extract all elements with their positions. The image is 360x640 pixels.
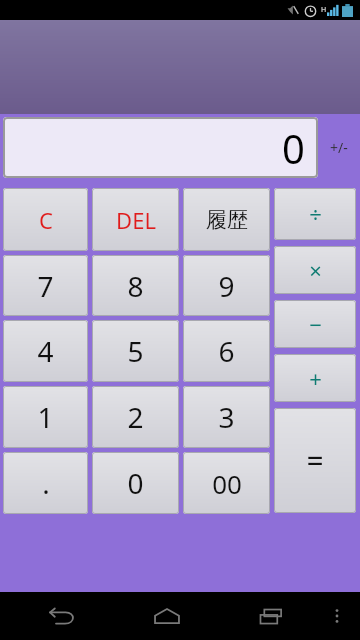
button[interactable]: DEL bbox=[92, 188, 179, 251]
button[interactable]: 3 bbox=[183, 386, 270, 448]
button[interactable]: 7 bbox=[3, 255, 88, 316]
staticText: 5 bbox=[127, 332, 144, 370]
button[interactable]: Add bbox=[274, 354, 356, 402]
button[interactable]: 6 bbox=[183, 320, 270, 382]
staticText: 9 bbox=[218, 267, 235, 305]
button[interactable]: 0 bbox=[92, 452, 179, 514]
button[interactable]: 5 bbox=[92, 320, 179, 382]
staticText: 3 bbox=[218, 398, 235, 436]
button[interactable]: 1 bbox=[3, 386, 88, 448]
staticText: 4 bbox=[37, 332, 54, 370]
button[interactable]: C bbox=[3, 188, 88, 251]
button[interactable]: Recent apps bbox=[219, 592, 324, 640]
staticText: 6 bbox=[218, 332, 235, 370]
button[interactable]: 4 bbox=[3, 320, 88, 382]
staticText: DEL bbox=[116, 205, 156, 235]
button[interactable]: Home bbox=[114, 592, 219, 640]
staticText: C bbox=[39, 205, 53, 235]
button[interactable]: 00 bbox=[183, 452, 270, 514]
button[interactable]: Back bbox=[10, 592, 114, 640]
staticText: = bbox=[306, 440, 324, 481]
staticText: 7 bbox=[37, 267, 54, 305]
staticText: . bbox=[42, 464, 50, 502]
staticText: 0 bbox=[282, 121, 305, 175]
staticText: +/- bbox=[330, 138, 348, 157]
staticText: 2 bbox=[127, 398, 144, 436]
staticText: 1 bbox=[37, 398, 54, 436]
staticText: 0 bbox=[127, 464, 144, 502]
staticText: × bbox=[309, 255, 322, 285]
button[interactable]: +/- bbox=[318, 117, 360, 178]
button[interactable]: 履歴 bbox=[183, 188, 270, 251]
staticText: + bbox=[309, 363, 322, 393]
button[interactable]: 2 bbox=[92, 386, 179, 448]
button[interactable]: 0 bbox=[3, 117, 318, 178]
staticText: 履歴 bbox=[206, 207, 248, 233]
button[interactable]: Subtract bbox=[274, 300, 356, 348]
button[interactable]: 8 bbox=[92, 255, 179, 316]
staticText: 8 bbox=[127, 267, 144, 305]
staticText: H bbox=[321, 5, 327, 15]
staticText: 00 bbox=[212, 466, 242, 501]
button[interactable]: Equals bbox=[274, 408, 356, 513]
button[interactable]: 9 bbox=[183, 255, 270, 316]
button[interactable]: . bbox=[3, 452, 88, 514]
staticText: ÷ bbox=[309, 199, 322, 229]
staticText: − bbox=[309, 309, 322, 339]
button[interactable]: Multiply bbox=[274, 246, 356, 294]
button[interactable]: More options bbox=[324, 592, 350, 640]
button[interactable]: Divide bbox=[274, 188, 356, 240]
